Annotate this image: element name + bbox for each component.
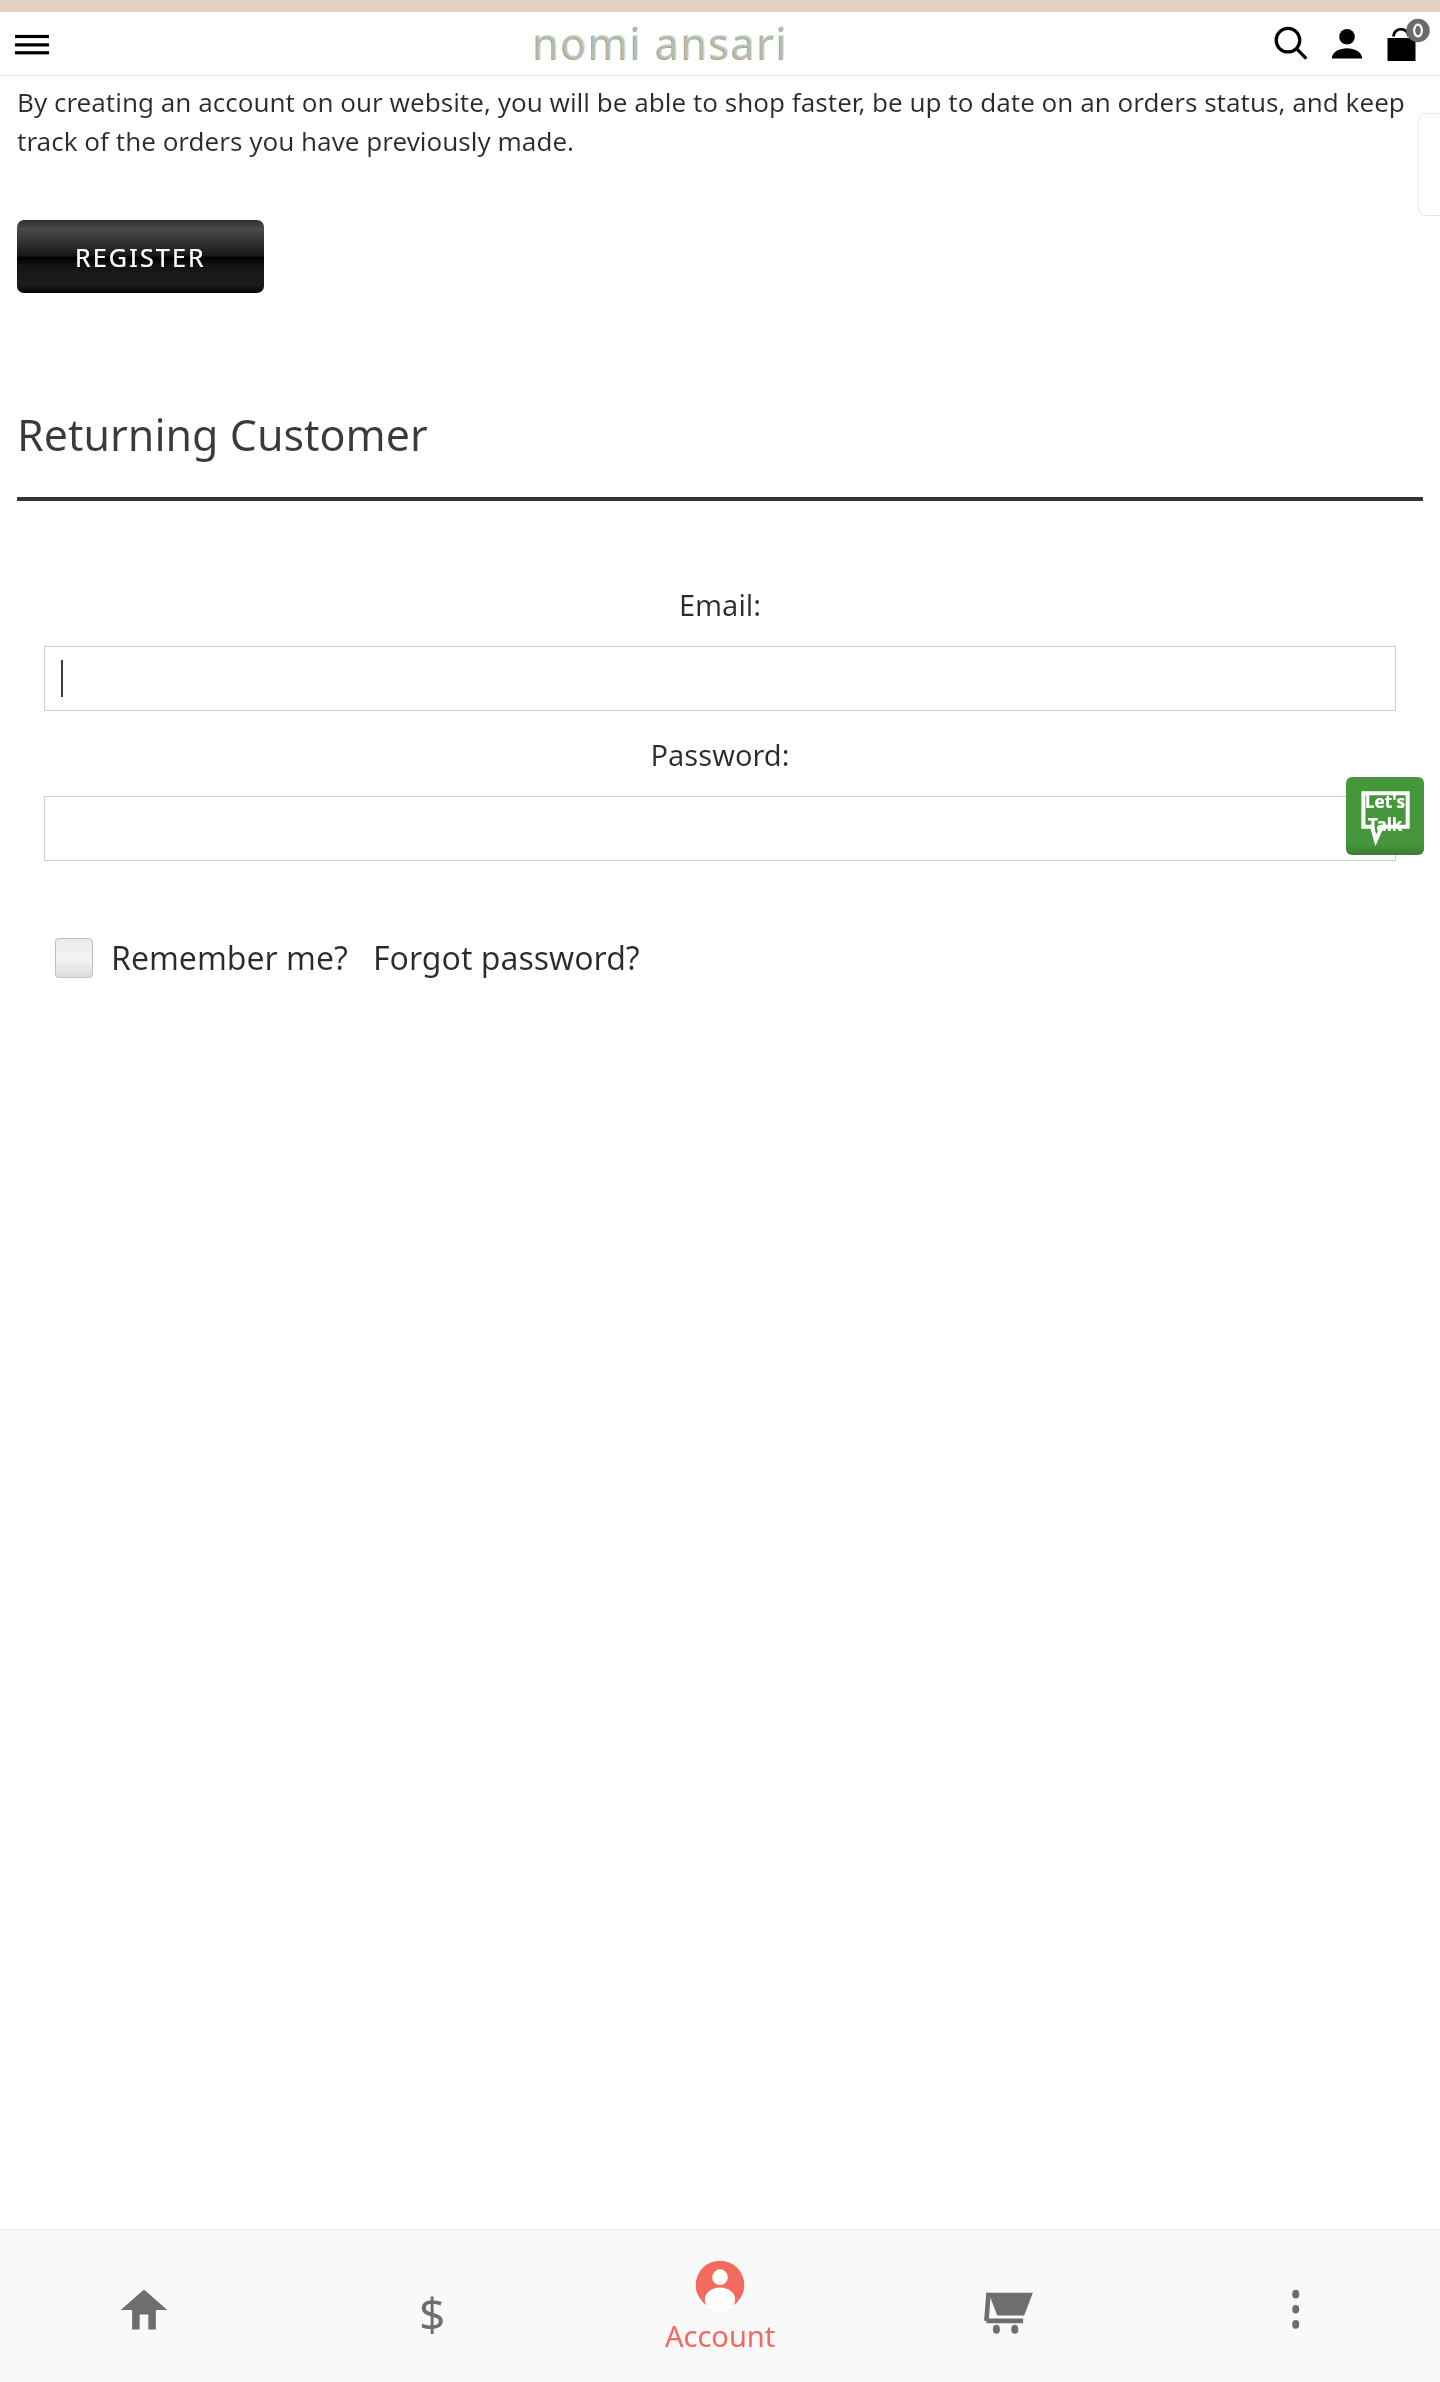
button[interactable]: Menu [8,20,56,68]
button[interactable]: Let's Talk chat [1346,777,1424,855]
staticText: Password: [0,735,1440,774]
staticText: nomi ansari [532,14,788,73]
staticText: Returning Customer [17,405,428,464]
staticText: REGISTER [75,240,206,274]
button[interactable] [44,646,1396,711]
button[interactable]: Home [0,2230,288,2382]
button[interactable]: Account [1324,21,1370,67]
button[interactable]: Remember me? [111,936,348,980]
button[interactable]: Cart [864,2230,1152,2382]
staticText: By creating an account on our website, y… [17,84,1416,158]
button[interactable]: More [1152,2230,1440,2382]
button[interactable]: Cart, 0 items [1380,19,1430,69]
button[interactable]: Remember me checkbox [55,938,93,978]
staticText: Email: [0,585,1440,624]
staticText: Let's [1365,790,1405,813]
button[interactable]: nomi ansari [532,14,788,73]
staticText: $ [419,2282,446,2336]
button[interactable] [44,796,1396,861]
button[interactable]: Forgot password? [373,936,640,980]
staticText: nomi ansari [533,13,789,72]
button[interactable]: REGISTER [17,220,264,293]
staticText: Talk [1368,813,1403,836]
button[interactable]: Account [576,2230,864,2382]
button[interactable]: Search [1268,21,1314,67]
button[interactable]: Offers [288,2230,576,2382]
staticText: Account [665,2316,776,2355]
